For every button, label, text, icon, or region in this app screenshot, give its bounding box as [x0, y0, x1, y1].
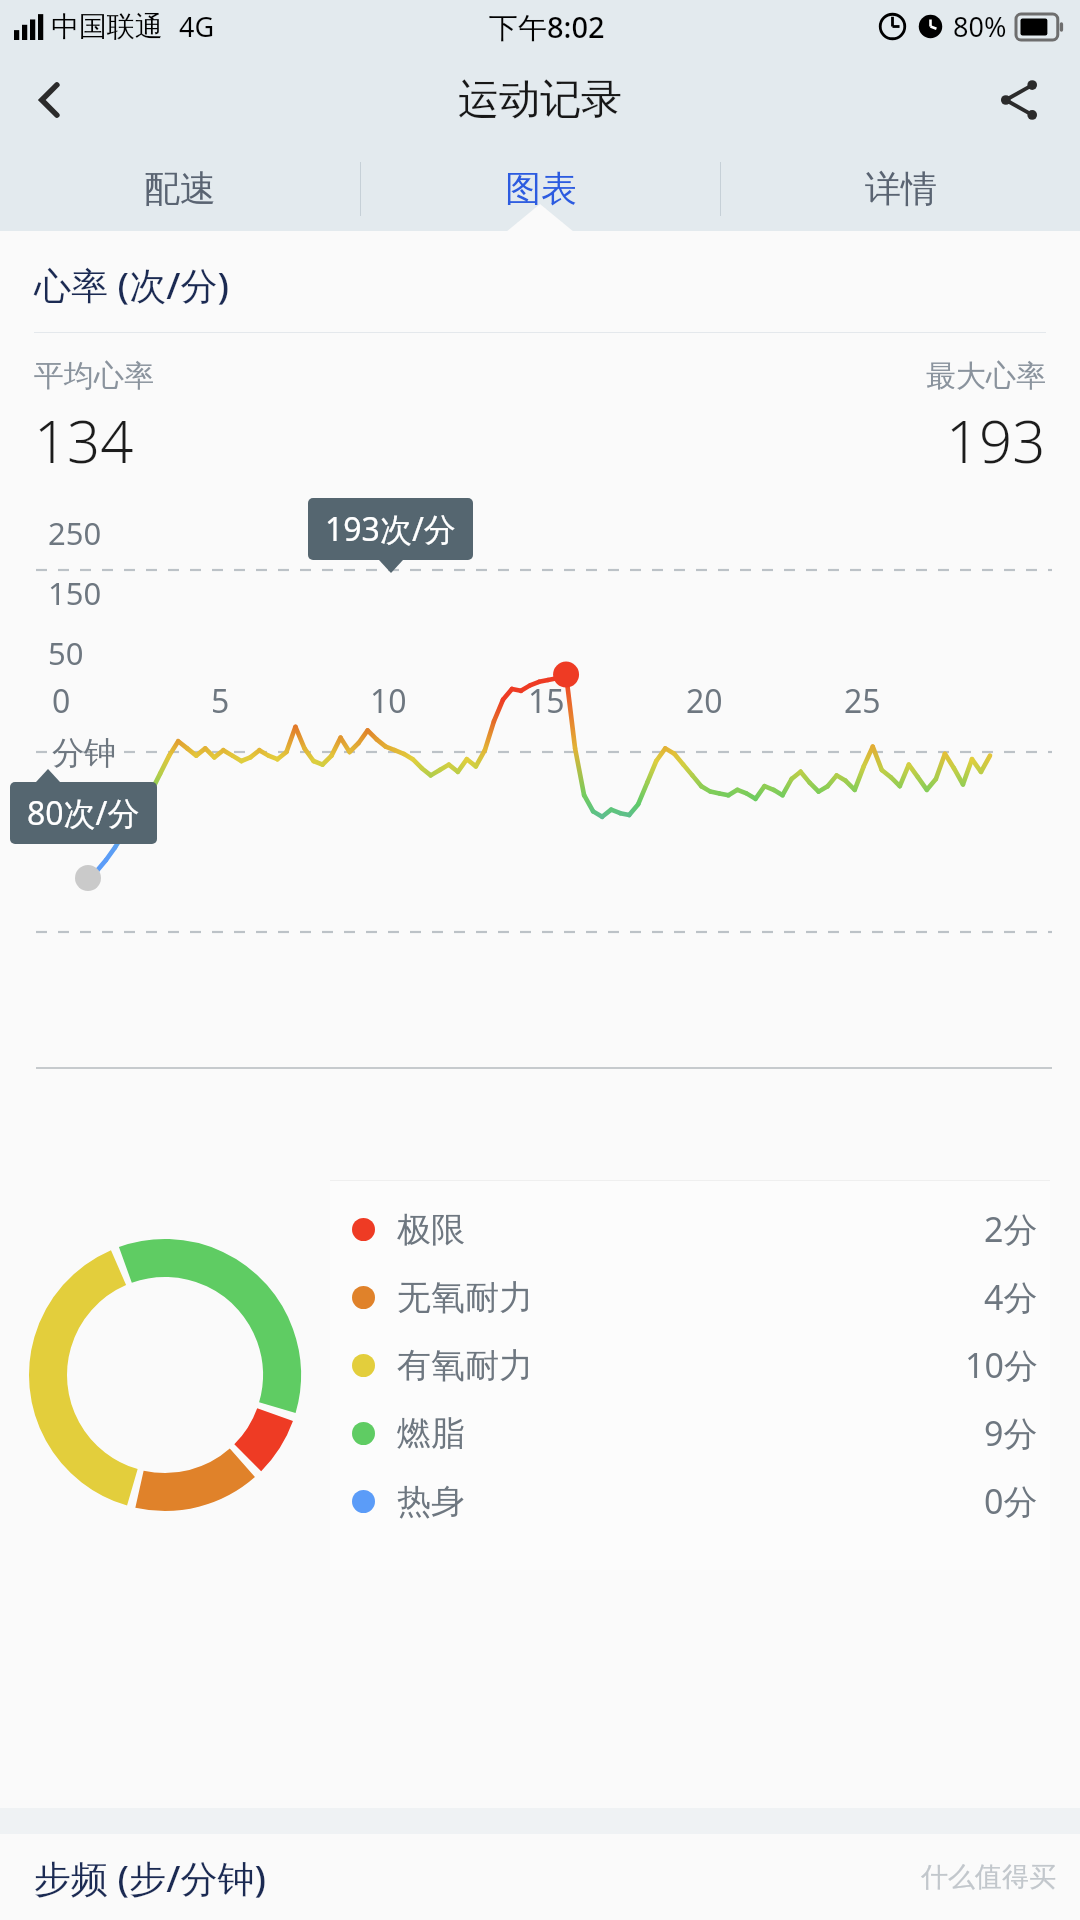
staticText: 心率 (次/分)	[34, 259, 229, 310]
staticText: 9分	[984, 1410, 1038, 1456]
staticText: 分钟	[52, 733, 116, 773]
staticText: 193次/分	[325, 507, 456, 551]
button[interactable]: 无氧耐力	[352, 1263, 1038, 1331]
staticText: 5	[211, 679, 230, 723]
staticText: 80次/分	[27, 791, 140, 835]
staticText: 中国联通	[51, 9, 163, 44]
button[interactable]: 有氧耐力	[352, 1331, 1038, 1399]
button[interactable]: 燃脂	[352, 1399, 1038, 1467]
staticText: 配速	[144, 166, 216, 211]
staticText: 50	[48, 632, 84, 674]
staticText: 4G	[179, 8, 215, 45]
staticText: 134	[34, 401, 134, 480]
staticText: 10分	[965, 1342, 1038, 1388]
button[interactable]: 极限	[352, 1195, 1038, 1263]
staticText: 0	[52, 679, 71, 723]
staticText: 热身	[397, 1480, 465, 1523]
staticText: 运动记录	[458, 74, 622, 126]
button[interactable]: 配速	[0, 146, 360, 231]
staticText: 25	[844, 679, 881, 723]
staticText: 20	[686, 679, 723, 723]
staticText: 下午8:02	[489, 7, 605, 47]
staticText: 无氧耐力	[397, 1276, 533, 1319]
staticText: 193	[946, 401, 1046, 480]
staticText: 10	[370, 679, 407, 723]
staticText: 80%	[953, 8, 1007, 45]
button[interactable]: 热身	[352, 1467, 1038, 1535]
button[interactable]: 详情	[721, 146, 1080, 231]
staticText: 150	[48, 572, 102, 614]
button[interactable]: 图表	[361, 146, 720, 231]
staticText: 平均心率	[34, 357, 154, 395]
button[interactable]: Back	[10, 59, 92, 141]
staticText: 步频 (步/分钟)	[34, 1852, 266, 1903]
staticText: 250	[48, 512, 102, 554]
staticText: 什么值得买	[921, 1860, 1056, 1894]
staticText: 15	[528, 679, 565, 723]
button[interactable]: Share	[978, 59, 1060, 141]
staticText: 2分	[984, 1206, 1038, 1252]
staticText: 极限	[397, 1208, 465, 1251]
staticText: 0分	[984, 1478, 1038, 1524]
staticText: 最大心率	[926, 357, 1046, 395]
staticText: 有氧耐力	[397, 1344, 533, 1387]
staticText: 燃脂	[397, 1412, 465, 1455]
staticText: 4分	[984, 1274, 1038, 1320]
staticText: 详情	[865, 166, 937, 211]
staticText: 图表	[505, 166, 577, 211]
